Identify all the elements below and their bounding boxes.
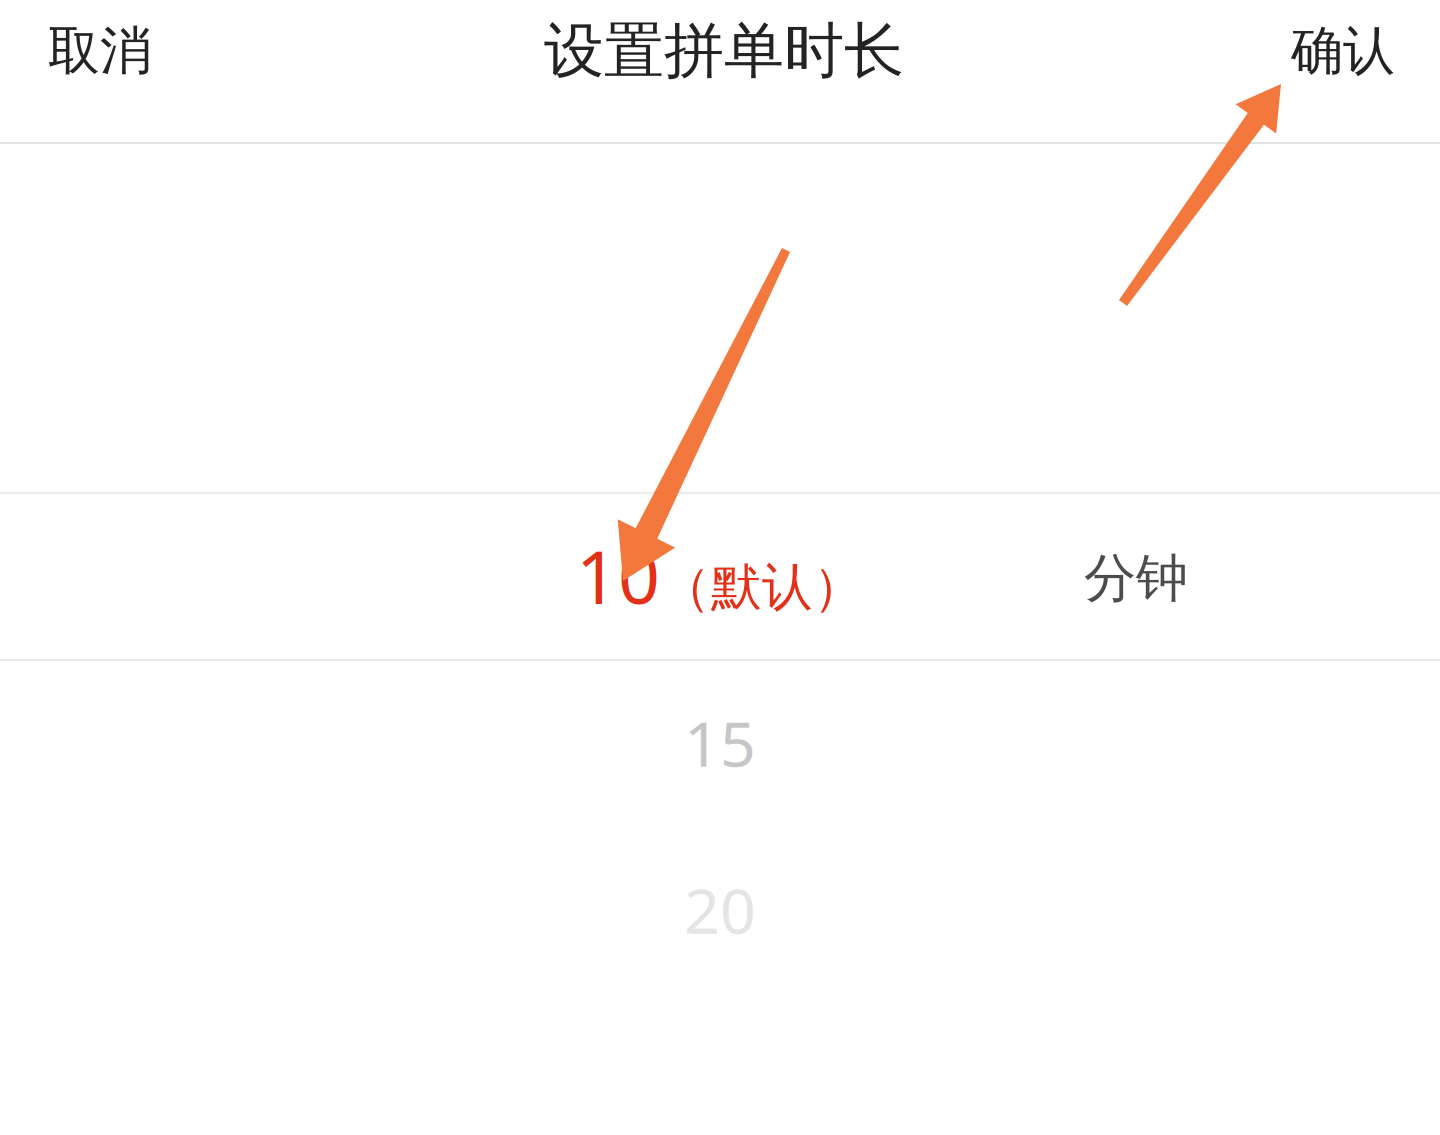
staticText: 15 <box>684 701 756 784</box>
staticText: 分钟 <box>1084 547 1188 610</box>
staticText: 20 <box>684 868 756 951</box>
staticText: （默认） <box>660 556 864 618</box>
staticText: 确认 <box>1291 19 1395 83</box>
staticText: 取消 <box>48 19 152 83</box>
button[interactable]: 取消 <box>0 0 218 142</box>
staticText: 设置拼单时长 <box>544 14 904 88</box>
button[interactable]: 15 <box>0 659 1440 826</box>
staticText: 10 <box>576 527 660 624</box>
button[interactable]: 确认 <box>1225 0 1440 142</box>
button[interactable]: 10 <box>576 492 996 659</box>
